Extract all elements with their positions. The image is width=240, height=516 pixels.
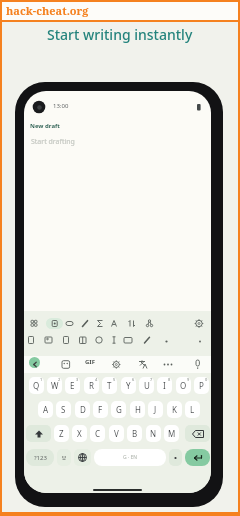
staticText: ?123 — [34, 454, 47, 462]
staticText: L — [190, 404, 195, 415]
button[interactable]: N — [146, 425, 161, 442]
button[interactable]: ?123 — [26, 449, 54, 466]
staticText: G · EN — [123, 454, 138, 461]
button[interactable]: P — [194, 377, 209, 394]
button[interactable]: hack-cheat.org — [0, 0, 240, 21]
staticText: New draft — [30, 122, 60, 130]
staticText: 3 — [76, 377, 79, 382]
staticText: K — [172, 404, 177, 415]
button[interactable] — [26, 425, 51, 442]
button[interactable]: V — [109, 425, 124, 442]
staticText: Start writing instantly — [47, 25, 193, 43]
button[interactable] — [169, 449, 182, 466]
staticText: S — [61, 404, 66, 415]
staticText: I — [163, 380, 166, 391]
staticText: J — [154, 404, 157, 415]
staticText: 8 — [168, 377, 171, 382]
button[interactable]: H — [130, 401, 145, 418]
staticText: N — [150, 428, 157, 439]
button[interactable]: I — [157, 377, 172, 394]
staticText: R — [89, 380, 94, 391]
staticText: 9 — [187, 377, 190, 382]
button[interactable]: O — [176, 377, 191, 394]
staticText: P — [199, 380, 204, 391]
button[interactable] — [185, 449, 210, 466]
button[interactable] — [74, 449, 91, 466]
staticText: X — [77, 428, 82, 439]
staticText: H — [135, 404, 141, 415]
staticText: W — [51, 380, 59, 391]
button[interactable]: D — [75, 401, 90, 418]
button[interactable] — [185, 425, 210, 442]
staticText: A — [43, 404, 49, 415]
staticText: B — [132, 428, 138, 439]
button[interactable]: G · EN — [94, 449, 166, 466]
staticText: G — [116, 404, 122, 415]
button[interactable]: L — [185, 401, 200, 418]
button[interactable] — [24, 311, 211, 356]
button[interactable]: Z — [54, 425, 69, 442]
button[interactable]: Y — [121, 377, 136, 394]
button[interactable]: G — [111, 401, 126, 418]
staticText: T — [107, 380, 112, 391]
button[interactable]: E — [65, 377, 80, 394]
button[interactable]: R — [84, 377, 99, 394]
staticText: 2 — [58, 377, 61, 382]
button[interactable]: U — [139, 377, 154, 394]
button[interactable]: X — [72, 425, 87, 442]
staticText: 6 — [132, 377, 135, 382]
button[interactable]: S — [56, 401, 71, 418]
staticText: C — [95, 428, 101, 439]
button[interactable] — [29, 357, 40, 368]
staticText: hack-cheat.org — [6, 3, 89, 18]
staticText: 5 — [113, 377, 116, 382]
staticText: E — [70, 380, 75, 391]
staticText: 0 — [205, 377, 208, 382]
button[interactable]: B — [127, 425, 142, 442]
button[interactable]: K — [167, 401, 182, 418]
staticText: GIF — [85, 358, 95, 366]
button[interactable] — [46, 318, 63, 329]
staticText: D — [80, 404, 86, 415]
staticText: Y — [126, 380, 131, 391]
button[interactable] — [57, 449, 71, 466]
staticText: Start drafting — [31, 137, 75, 147]
staticText: 13:00 — [53, 102, 69, 110]
staticText: O — [180, 380, 187, 391]
button[interactable]: W — [47, 377, 62, 394]
button[interactable]: F — [93, 401, 108, 418]
staticText: U — [144, 380, 150, 391]
button[interactable]: A — [38, 401, 53, 418]
staticText: Q — [33, 380, 40, 391]
staticText: 4 — [95, 377, 98, 382]
button[interactable]: Q — [29, 377, 44, 394]
button[interactable]: T — [102, 377, 117, 394]
staticText: F — [98, 404, 103, 415]
button[interactable]: J — [148, 401, 163, 418]
staticText: V — [114, 428, 119, 439]
button[interactable]: C — [90, 425, 105, 442]
staticText: 7 — [150, 377, 153, 382]
staticText: 1 — [40, 377, 43, 382]
staticText: Z — [59, 428, 64, 439]
button[interactable]: M — [164, 425, 179, 442]
staticText: M — [168, 428, 176, 439]
